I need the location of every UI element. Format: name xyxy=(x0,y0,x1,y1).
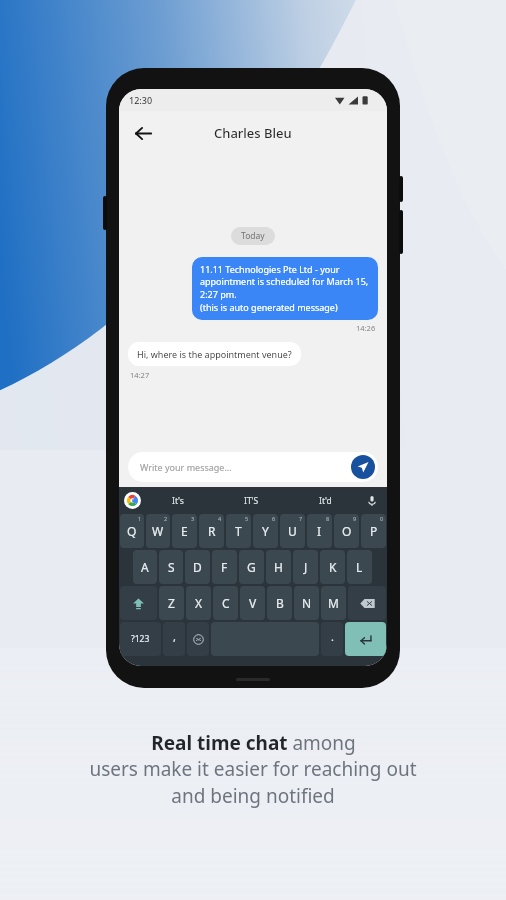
button[interactable]: Shift xyxy=(120,586,157,620)
staticText: Y xyxy=(262,523,269,539)
button[interactable]: Y xyxy=(253,514,278,548)
button[interactable]: F xyxy=(212,550,237,584)
button[interactable]: B xyxy=(267,586,292,620)
button[interactable]: Send xyxy=(351,455,375,479)
staticText: 12:30 xyxy=(129,94,153,106)
staticText: 8 xyxy=(326,515,330,522)
button[interactable]: , xyxy=(163,622,185,656)
staticText: 14:27 xyxy=(130,370,150,380)
button[interactable]: O xyxy=(334,514,359,548)
staticText: P xyxy=(370,523,378,539)
button[interactable]: 11.11 Technologies Pte Ltd - your appoin… xyxy=(192,257,378,320)
staticText: K xyxy=(329,559,337,575)
staticText: 6 xyxy=(272,515,276,522)
staticText: Today xyxy=(241,230,265,242)
button[interactable]: C xyxy=(213,586,238,620)
staticText: 11.11 Technologies Pte Ltd - your appoin… xyxy=(200,263,370,314)
staticText: IT'S xyxy=(244,495,259,507)
staticText: I xyxy=(317,523,322,539)
staticText: V xyxy=(249,595,257,611)
button[interactable]: It's xyxy=(141,487,214,514)
button[interactable]: X xyxy=(186,586,211,620)
staticText: users make it easier for reaching out an… xyxy=(89,756,417,809)
staticText: Hi, where is the appointment venue? xyxy=(137,348,292,360)
staticText: G xyxy=(247,559,256,575)
button[interactable]: L xyxy=(347,550,372,584)
staticText: , xyxy=(173,629,176,644)
button[interactable]: W xyxy=(146,514,170,548)
staticText: 0 xyxy=(380,515,384,522)
button[interactable]: H xyxy=(266,550,291,584)
staticText: F xyxy=(221,559,228,575)
staticText: 4 xyxy=(218,515,222,522)
button[interactable]: IT'S xyxy=(214,487,288,514)
staticText: Charles Bleu xyxy=(214,124,292,142)
button[interactable]: Enter xyxy=(345,622,386,656)
button[interactable]: A xyxy=(133,550,157,584)
button[interactable]: Hi, where is the appointment venue? xyxy=(128,342,301,366)
button[interactable]: T xyxy=(226,514,251,548)
staticText: C xyxy=(222,595,230,611)
staticText: B xyxy=(276,595,284,611)
button[interactable]: E xyxy=(172,514,197,548)
staticText: O xyxy=(342,523,352,539)
staticText: 2 xyxy=(164,515,168,522)
button[interactable]: P xyxy=(361,514,386,548)
staticText: 1 xyxy=(138,515,142,522)
staticText: 3 xyxy=(191,515,195,522)
button[interactable]: V xyxy=(240,586,265,620)
button[interactable]: M xyxy=(321,586,346,620)
staticText: Real time chat among xyxy=(151,730,356,756)
staticText: H xyxy=(274,559,283,575)
staticText: Q xyxy=(127,523,137,539)
button[interactable]: Google xyxy=(124,492,141,509)
staticText: D xyxy=(193,559,202,575)
button[interactable]: D xyxy=(185,550,210,584)
staticText: Write your message... xyxy=(140,461,232,473)
button[interactable]: Z xyxy=(159,586,184,620)
button[interactable]: R xyxy=(199,514,224,548)
staticText: W xyxy=(152,523,164,539)
staticText: It's xyxy=(172,495,184,507)
button[interactable]: U xyxy=(280,514,305,548)
staticText: X xyxy=(195,595,203,611)
button[interactable]: K xyxy=(320,550,345,584)
staticText: 7 xyxy=(299,515,303,522)
staticText: ?123 xyxy=(131,633,150,645)
staticText: L xyxy=(356,559,363,575)
button[interactable]: Q xyxy=(120,514,144,548)
button[interactable]: It'd xyxy=(288,487,362,514)
staticText: U xyxy=(288,523,297,539)
staticText: A xyxy=(141,559,149,575)
staticText: . xyxy=(331,629,334,644)
button[interactable]: S xyxy=(159,550,183,584)
button[interactable]: Write your message... xyxy=(128,452,378,482)
button[interactable]: . xyxy=(321,622,343,656)
staticText: J xyxy=(304,559,308,575)
button[interactable]: N xyxy=(294,586,319,620)
staticText: E xyxy=(181,523,188,539)
staticText: It'd xyxy=(319,495,332,507)
staticText: R xyxy=(208,523,216,539)
button[interactable]: Backspace xyxy=(348,586,386,620)
staticText: 9 xyxy=(353,515,357,522)
staticText: N xyxy=(302,595,312,611)
button[interactable]: ?123 xyxy=(120,622,161,656)
button[interactable]: G xyxy=(239,550,264,584)
staticText: 5 xyxy=(245,515,249,522)
staticText: Z xyxy=(168,595,175,611)
staticText: 14:26 xyxy=(356,323,376,333)
staticText: S xyxy=(168,559,175,575)
button[interactable]: Voice input xyxy=(362,487,382,514)
staticText: T xyxy=(235,523,242,539)
button[interactable]: Back xyxy=(127,117,159,149)
button[interactable]: J xyxy=(293,550,318,584)
button[interactable]: Emoji xyxy=(187,622,209,656)
staticText: M xyxy=(328,595,339,611)
button[interactable]: I xyxy=(307,514,332,548)
